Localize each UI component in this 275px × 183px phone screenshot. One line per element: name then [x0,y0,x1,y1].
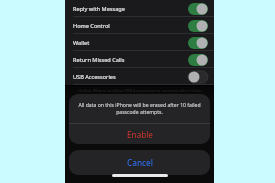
button[interactable]: On [188,37,208,49]
button[interactable]: On [188,54,208,66]
button[interactable]: Enable [69,124,210,144]
staticText: Wallet [73,39,188,47]
staticText: Enable [127,129,153,140]
button[interactable]: Off [188,71,208,83]
button[interactable]: On [188,20,208,32]
button[interactable]: Return Missed Calls [65,51,214,68]
button[interactable]: Cancel [69,150,210,175]
staticText: Home Control [73,22,188,30]
staticText: USB Accessories [73,73,188,81]
staticText: Cancel [127,157,153,168]
staticText: Reply with Message [73,5,188,13]
button[interactable]: USB Accessories [65,68,214,85]
staticText: All data on this iPhone will be erased a… [78,102,201,116]
button[interactable]: On [188,3,208,15]
button[interactable]: Wallet [65,34,214,51]
button[interactable]: Home Control [65,17,214,34]
button[interactable]: Reply with Message [65,0,214,17]
staticText: Unlock iPhone to allow USB accessories t… [73,88,206,100]
staticText: Return Missed Calls [73,56,188,64]
